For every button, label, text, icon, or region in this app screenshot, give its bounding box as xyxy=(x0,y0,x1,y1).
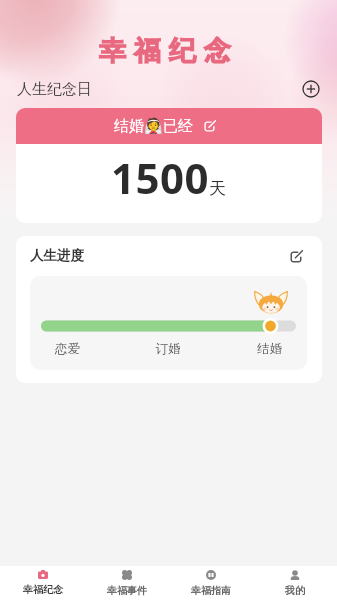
staticText: 订婚 xyxy=(130,341,206,357)
button[interactable]: 幸福指南 xyxy=(169,566,253,600)
staticText: 人生进度 xyxy=(30,247,84,264)
button[interactable]: Add anniversary xyxy=(302,80,320,98)
staticText: 幸福事件 xyxy=(107,584,147,597)
staticText: 我的 xyxy=(285,584,305,597)
staticText: 恋爱 xyxy=(55,341,130,357)
button[interactable]: 幸福纪念 xyxy=(0,566,85,600)
button[interactable]: 我的 xyxy=(253,566,337,600)
staticText: 人生纪念日 xyxy=(17,80,92,99)
staticText: 天 xyxy=(209,178,226,199)
staticText: 幸福纪念 xyxy=(99,34,239,68)
staticText: 1500 xyxy=(111,149,210,206)
staticText: 幸福纪念 xyxy=(23,583,63,596)
staticText: 结婚 xyxy=(206,341,282,357)
button[interactable]: Edit progress xyxy=(294,248,308,262)
staticText: 幸福指南 xyxy=(191,584,231,597)
button[interactable]: 幸福事件 xyxy=(85,566,169,600)
staticText: 结婚👰已经 xyxy=(114,117,193,136)
button[interactable]: 结婚👰已经 xyxy=(16,108,322,223)
